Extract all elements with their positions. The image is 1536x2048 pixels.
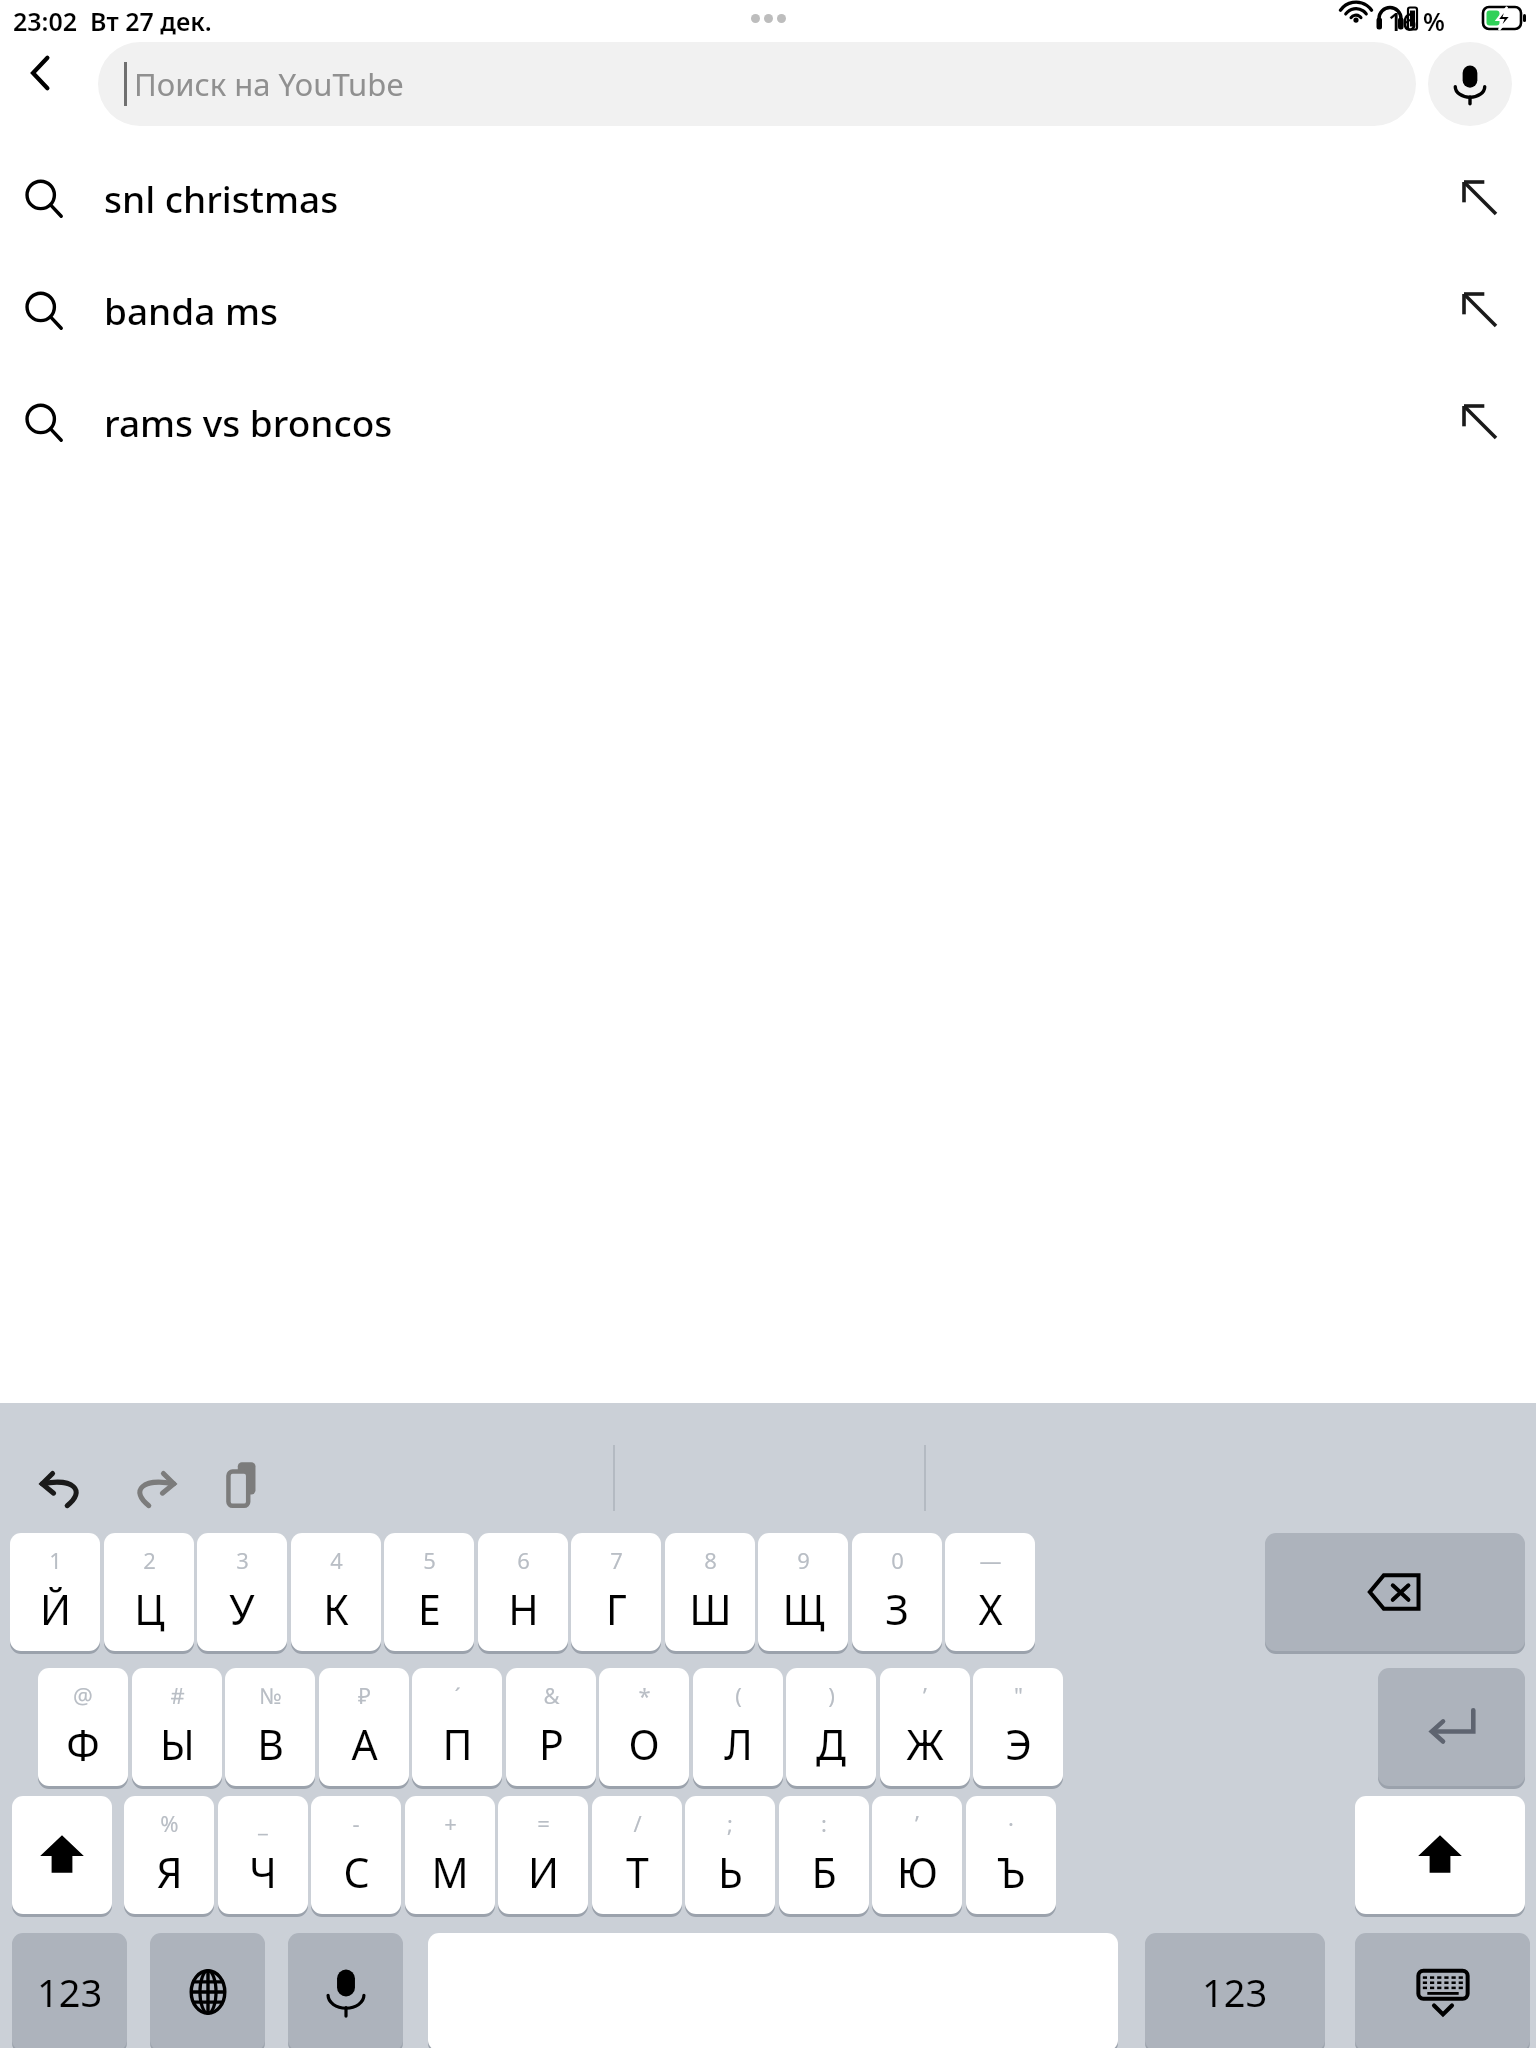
staticText: = — [537, 1808, 550, 1838]
staticText: Ж — [906, 1716, 944, 1772]
button[interactable]: 2 — [104, 1533, 194, 1651]
button[interactable]: — — [945, 1533, 1035, 1651]
staticText: banda ms — [104, 285, 279, 335]
button[interactable]: % — [124, 1796, 214, 1914]
staticText: 6 — [517, 1545, 530, 1575]
staticText: И — [528, 1844, 559, 1900]
button[interactable]: Voice search — [1428, 42, 1512, 126]
button[interactable]: ( — [693, 1668, 783, 1786]
staticText: 5 — [423, 1545, 436, 1575]
button[interactable]: Hide keyboard — [1355, 1933, 1530, 2048]
button[interactable]: 3 — [197, 1533, 287, 1651]
button[interactable]: ’ — [880, 1668, 970, 1786]
button[interactable]: Shift — [1355, 1796, 1525, 1914]
button[interactable]: 4 — [291, 1533, 381, 1651]
staticText: @ — [73, 1680, 93, 1710]
staticText: Е — [418, 1581, 441, 1637]
staticText: З — [885, 1581, 909, 1637]
staticText: - — [352, 1808, 360, 1838]
staticText: 3 — [236, 1545, 249, 1575]
staticText: 4 — [330, 1545, 343, 1575]
staticText: 7 — [610, 1545, 623, 1575]
staticText: · — [1008, 1808, 1014, 1838]
button[interactable]: 6 — [478, 1533, 568, 1651]
button[interactable]: 1 — [10, 1533, 100, 1651]
staticText: + — [444, 1808, 457, 1838]
button[interactable]: № — [225, 1668, 315, 1786]
staticText: — — [979, 1545, 1002, 1575]
button[interactable]: 123 — [12, 1933, 127, 2048]
button[interactable]: Toolbar action — [210, 1451, 276, 1517]
button[interactable]: Shift — [12, 1796, 112, 1914]
staticText: П — [442, 1716, 473, 1772]
button[interactable]: 8 — [665, 1533, 755, 1651]
button[interactable]: Back — [10, 42, 72, 104]
staticText: Ш — [689, 1581, 732, 1637]
button[interactable]: rams vs broncos — [0, 366, 1536, 478]
button[interactable]: # — [132, 1668, 222, 1786]
staticText: Поиск на YouTube — [134, 63, 404, 105]
staticText: Ъ — [997, 1844, 1026, 1900]
staticText: Ц — [134, 1581, 165, 1637]
staticText: С — [343, 1844, 370, 1900]
button[interactable]: 9 — [758, 1533, 848, 1651]
button[interactable]: @ — [38, 1668, 128, 1786]
staticText: Ь — [718, 1844, 743, 1900]
staticText: " — [1014, 1680, 1023, 1710]
staticText: М — [431, 1844, 469, 1900]
staticText: : — [821, 1808, 827, 1838]
button[interactable]: banda ms — [0, 254, 1536, 366]
staticText: # — [170, 1680, 185, 1710]
button[interactable]: Return — [1378, 1668, 1525, 1786]
staticText: Г — [606, 1581, 627, 1637]
button[interactable]: * — [599, 1668, 689, 1786]
button[interactable]: ; — [685, 1796, 775, 1914]
staticText: Т — [626, 1844, 649, 1900]
button[interactable]: 123 — [1145, 1933, 1325, 2048]
button[interactable]: Insert suggestion — [1450, 168, 1510, 228]
button[interactable]: - — [311, 1796, 401, 1914]
button[interactable]: snl christmas — [0, 142, 1536, 254]
button[interactable]: 5 — [384, 1533, 474, 1651]
staticText: ’ — [915, 1808, 919, 1838]
staticText: У — [229, 1581, 255, 1637]
staticText: 8 — [704, 1545, 717, 1575]
staticText: rams vs broncos — [104, 397, 393, 447]
button[interactable]: = — [498, 1796, 588, 1914]
button[interactable]: : — [779, 1796, 869, 1914]
button[interactable]: · — [966, 1796, 1056, 1914]
button[interactable]: Insert suggestion — [1450, 280, 1510, 340]
button[interactable]: + — [405, 1796, 495, 1914]
staticText: В — [257, 1716, 284, 1772]
staticText: 2 — [143, 1545, 156, 1575]
button[interactable]: / — [592, 1796, 682, 1914]
button[interactable]: _ — [218, 1796, 308, 1914]
button[interactable]: ₽ — [319, 1668, 409, 1786]
staticText: ´ — [454, 1680, 461, 1710]
button[interactable]: " — [973, 1668, 1063, 1786]
staticText: Й — [40, 1581, 71, 1637]
button[interactable]: & — [506, 1668, 596, 1786]
staticText: Р — [539, 1716, 564, 1772]
button[interactable]: Dictation — [288, 1933, 403, 2048]
staticText: Щ — [782, 1581, 825, 1637]
staticText: 0 — [891, 1545, 904, 1575]
button[interactable]: 0 — [852, 1533, 942, 1651]
staticText: % — [160, 1808, 179, 1838]
button[interactable]: Toolbar action — [30, 1455, 96, 1521]
button[interactable]: Toolbar action — [120, 1455, 186, 1521]
button[interactable]: ´ — [412, 1668, 502, 1786]
button[interactable]: Change keyboard — [150, 1933, 265, 2048]
button[interactable]: Backspace — [1265, 1533, 1525, 1651]
staticText: Ф — [66, 1716, 100, 1772]
button[interactable]: Insert suggestion — [1450, 392, 1510, 452]
staticText: snl christmas — [104, 173, 339, 223]
button[interactable]: ) — [786, 1668, 876, 1786]
staticText: Я — [156, 1844, 183, 1900]
button[interactable]: 7 — [571, 1533, 661, 1651]
staticText: Ч — [249, 1844, 277, 1900]
button[interactable]: Поиск на YouTube — [98, 42, 1416, 126]
button[interactable]: ’ — [872, 1796, 962, 1914]
staticText: _ — [258, 1808, 268, 1838]
